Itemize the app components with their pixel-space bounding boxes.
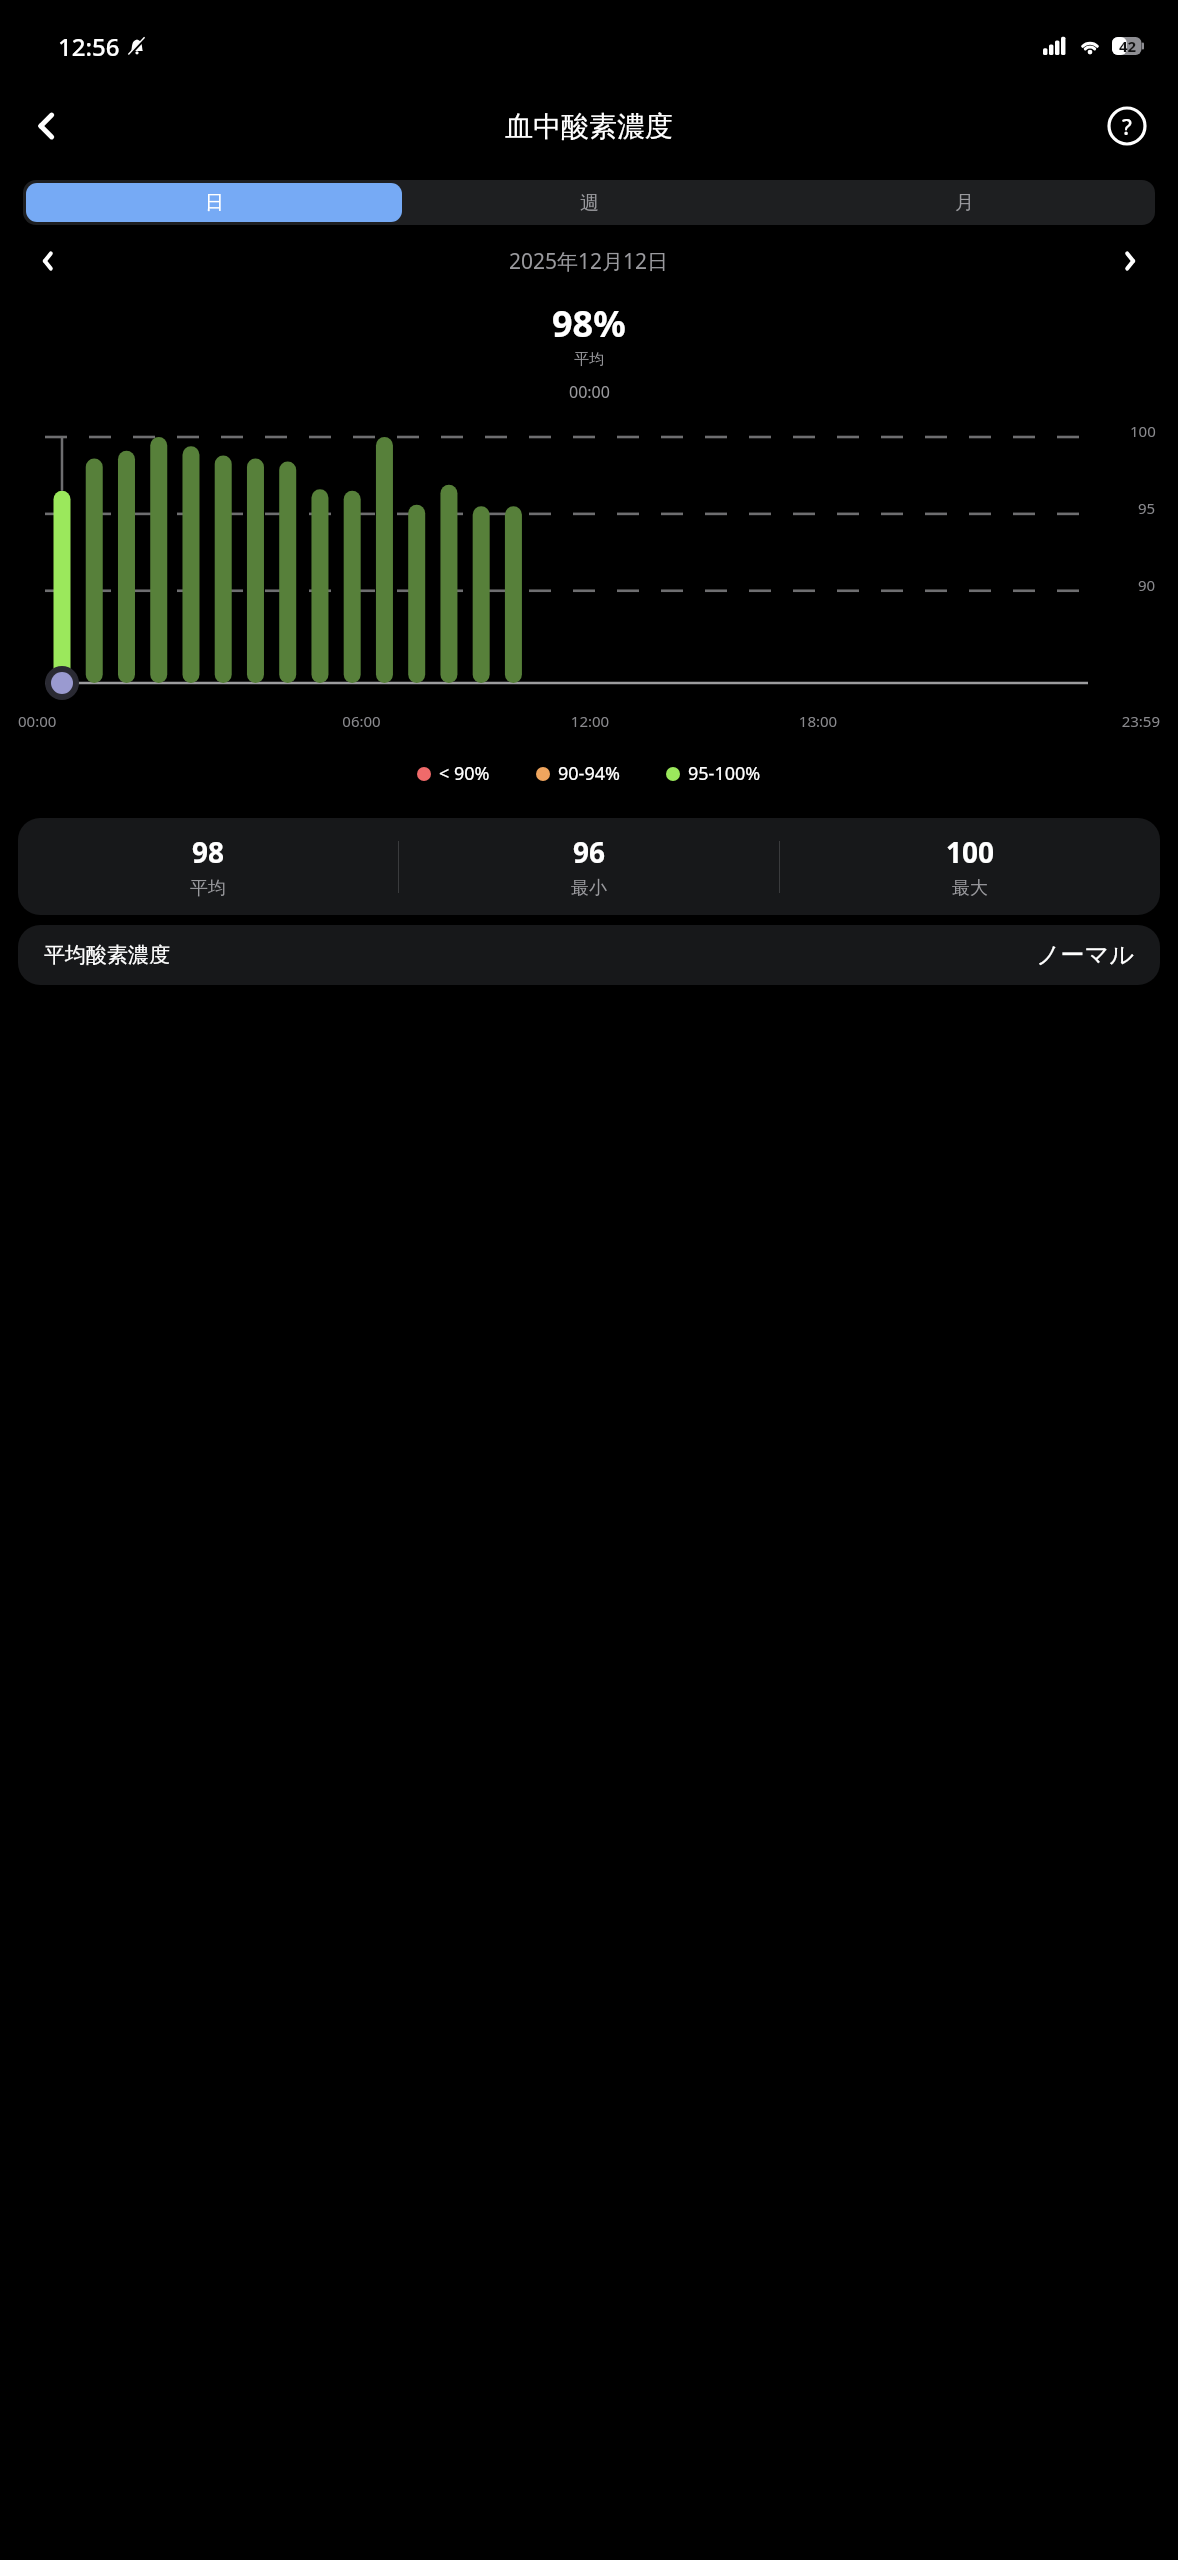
staticText: 12:00 [476,711,704,731]
button[interactable]: 月 [777,183,1152,222]
staticText: 95 [1138,498,1156,518]
staticText: 日 [205,191,224,215]
staticText: 平均 [574,350,604,369]
button[interactable]: Help [1100,99,1154,153]
staticText: 42 [1119,36,1137,56]
staticText: 最小 [571,877,607,900]
staticText: 18:00 [704,711,932,731]
button[interactable]: 98 [18,818,1160,915]
staticText: 12:56 [58,30,120,63]
staticText: 98% [552,299,626,348]
staticText: ノーマル [1036,940,1134,970]
staticText: 週 [580,191,599,215]
staticText: < 90% [439,761,490,786]
button[interactable]: Back [20,99,74,153]
staticText: 00:00 [18,711,247,731]
staticText: 95-100% [688,761,761,786]
button[interactable]: Previous day [26,241,70,281]
staticText: 90-94% [558,761,620,786]
staticText: ? [1122,111,1132,141]
button[interactable]: 平均酸素濃度 [18,925,1160,985]
staticText: 100 [946,833,995,871]
staticText: 96 [573,833,606,871]
button[interactable]: Next day [1108,241,1152,281]
staticText: 06:00 [247,711,476,731]
staticText: 平均酸素濃度 [44,942,170,968]
staticText: 00:00 [569,381,610,403]
staticText: 98 [192,833,225,871]
staticText: 月 [955,191,974,215]
button[interactable]: 週 [402,183,777,222]
staticText: 血中酸素濃度 [505,109,673,144]
staticText: 100 [1130,421,1156,441]
staticText: 90 [1138,575,1156,595]
button[interactable]: 日 [26,183,402,222]
staticText: 最大 [952,877,988,900]
staticText: 平均 [190,877,226,900]
staticText: 23:59 [932,711,1160,731]
staticText: 2025年12月12日 [509,247,669,276]
